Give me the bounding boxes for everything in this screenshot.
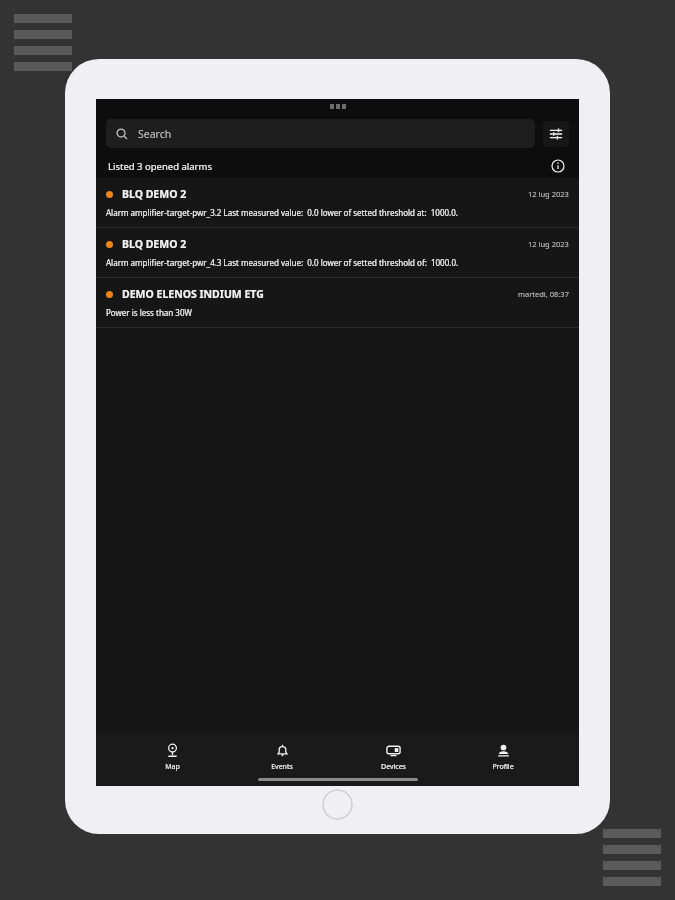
- staticText: BLQ DEMO 2: [122, 187, 187, 201]
- button[interactable]: BLQ DEMO 2: [96, 178, 579, 227]
- button[interactable]: DEMO ELENOS INDIUM ETG: [96, 278, 579, 327]
- staticText: 12 lug 2023: [528, 189, 569, 199]
- staticText: martedì, 08:37: [518, 289, 569, 299]
- button[interactable]: BLQ DEMO 2: [96, 228, 579, 277]
- button[interactable]: Info: [549, 157, 567, 175]
- staticText: Events: [271, 762, 293, 772]
- staticText: Map: [165, 762, 180, 772]
- staticText: 12 lug 2023: [528, 239, 569, 249]
- button[interactable]: Profile: [468, 740, 538, 775]
- staticText: Profile: [492, 762, 514, 772]
- staticText: BLQ DEMO 2: [122, 237, 187, 251]
- staticText: Devices: [381, 762, 406, 772]
- button[interactable]: Events: [247, 740, 317, 775]
- button[interactable]: Devices: [358, 740, 428, 775]
- staticText: DEMO ELENOS INDIUM ETG: [122, 287, 264, 301]
- staticText: Listed 3 opened alarms: [108, 160, 212, 173]
- button[interactable]: Search: [106, 119, 535, 148]
- button[interactable]: Map: [137, 740, 207, 775]
- staticText: Power is less than 30W: [106, 307, 192, 318]
- staticText: Search: [138, 127, 172, 141]
- staticText: Alarm amplifier-target-pwr_3.2 Last meas…: [106, 207, 458, 218]
- button[interactable]: Filter: [543, 121, 569, 147]
- staticText: Alarm amplifier-target-pwr_4.3 Last meas…: [106, 257, 459, 268]
